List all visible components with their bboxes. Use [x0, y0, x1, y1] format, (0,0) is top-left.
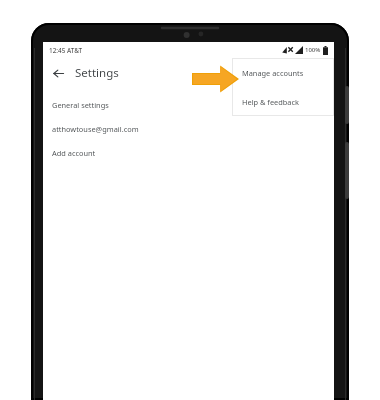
button[interactable]: General settings — [43, 93, 334, 117]
staticText: 100% — [305, 46, 321, 54]
button[interactable]: Manage accounts — [232, 58, 334, 87]
staticText: atthowtouse@gmail.com — [52, 124, 139, 134]
staticText: General settings — [52, 100, 109, 110]
staticText: Settings — [75, 65, 119, 81]
button[interactable]: Help & feedback — [232, 87, 334, 116]
staticText: Manage accounts — [242, 68, 304, 78]
button[interactable]: atthowtouse@gmail.com — [43, 117, 334, 141]
staticText: Help & feedback — [242, 97, 299, 107]
button[interactable]: Add account — [43, 141, 334, 165]
staticText: 12:45 AT&T — [49, 46, 83, 55]
button[interactable]: Back — [48, 63, 68, 83]
staticText: Add account — [52, 148, 96, 158]
